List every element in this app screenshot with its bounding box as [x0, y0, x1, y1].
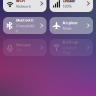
staticText: Wi-Fi [16, 0, 25, 3]
staticText: Unavailable [16, 23, 35, 33]
button[interactable]: AirDrop [49, 39, 93, 56]
staticText: Airplane [62, 20, 77, 25]
button[interactable]: Hotspot [3, 39, 46, 56]
staticText: Cellular [62, 0, 75, 3]
staticText: AirDrop [62, 40, 77, 45]
staticText: Off [16, 48, 22, 53]
staticText: Hotspot [16, 42, 31, 47]
staticText: 100% [62, 4, 71, 9]
staticText: Bluetooth [16, 18, 33, 23]
button[interactable]: Bluetooth [3, 17, 46, 34]
staticText: Network [16, 4, 31, 9]
button[interactable]: Wi-Fi [3, 0, 46, 12]
button[interactable]: Airplane [49, 17, 93, 34]
staticText: Mode [62, 26, 71, 31]
staticText: Contacts Only [62, 45, 76, 55]
button[interactable]: Cellular [49, 0, 93, 12]
